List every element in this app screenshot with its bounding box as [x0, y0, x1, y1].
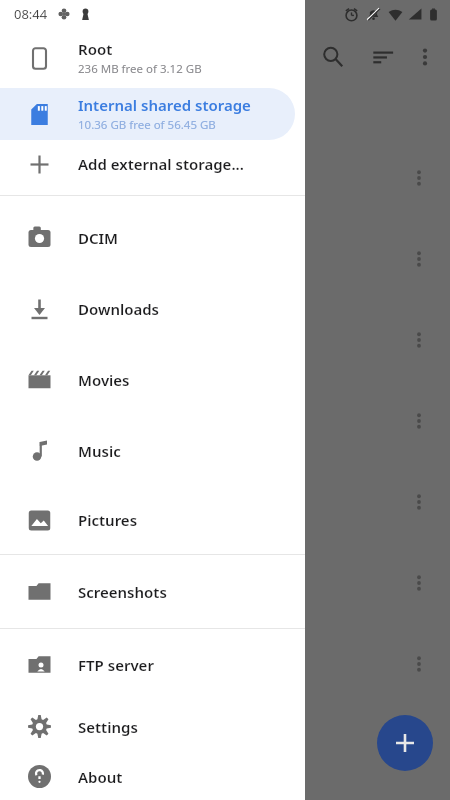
- staticText: Pictures: [78, 510, 138, 530]
- button[interactable]: More options: [405, 37, 445, 77]
- button[interactable]: Movies: [0, 344, 305, 415]
- button[interactable]: Settings: [0, 700, 305, 753]
- button[interactable]: About: [0, 753, 305, 800]
- button[interactable]: DCIM: [0, 202, 305, 273]
- staticText: Movies: [78, 370, 130, 390]
- staticText: FTP server: [78, 655, 154, 675]
- staticText: Internal shared storage: [78, 95, 251, 115]
- staticText: Root: [78, 39, 113, 59]
- button[interactable]: Pictures: [0, 486, 305, 554]
- staticText: Music: [78, 441, 121, 461]
- button[interactable]: Item options: [399, 401, 439, 441]
- button[interactable]: Item options: [399, 482, 439, 522]
- button[interactable]: Add: [377, 715, 433, 771]
- staticText: 10.36 GB free of 56.45 GB: [78, 117, 216, 133]
- staticText: Screenshots: [78, 582, 167, 602]
- button[interactable]: FTP server: [0, 629, 305, 700]
- staticText: Add external storage...: [78, 154, 244, 174]
- staticText: 236 MB free of 3.12 GB: [78, 61, 202, 77]
- button[interactable]: Add external storage...: [0, 140, 305, 188]
- staticText: DCIM: [78, 228, 119, 248]
- button[interactable]: Music: [0, 415, 305, 486]
- button[interactable]: Downloads: [0, 273, 305, 344]
- button[interactable]: Internal shared storage: [0, 88, 295, 140]
- button[interactable]: Item options: [399, 320, 439, 360]
- staticText: Settings: [78, 717, 138, 737]
- button[interactable]: Item options: [399, 239, 439, 279]
- button[interactable]: Item options: [399, 158, 439, 198]
- button[interactable]: Sort: [363, 37, 403, 77]
- button[interactable]: Root: [0, 28, 305, 88]
- button[interactable]: Item options: [399, 644, 439, 684]
- staticText: About: [78, 767, 123, 787]
- staticText: Downloads: [78, 299, 160, 319]
- button[interactable]: Item options: [399, 563, 439, 603]
- button[interactable]: Search: [313, 37, 353, 77]
- staticText: 08:44: [14, 5, 48, 23]
- button[interactable]: Screenshots: [0, 555, 305, 628]
